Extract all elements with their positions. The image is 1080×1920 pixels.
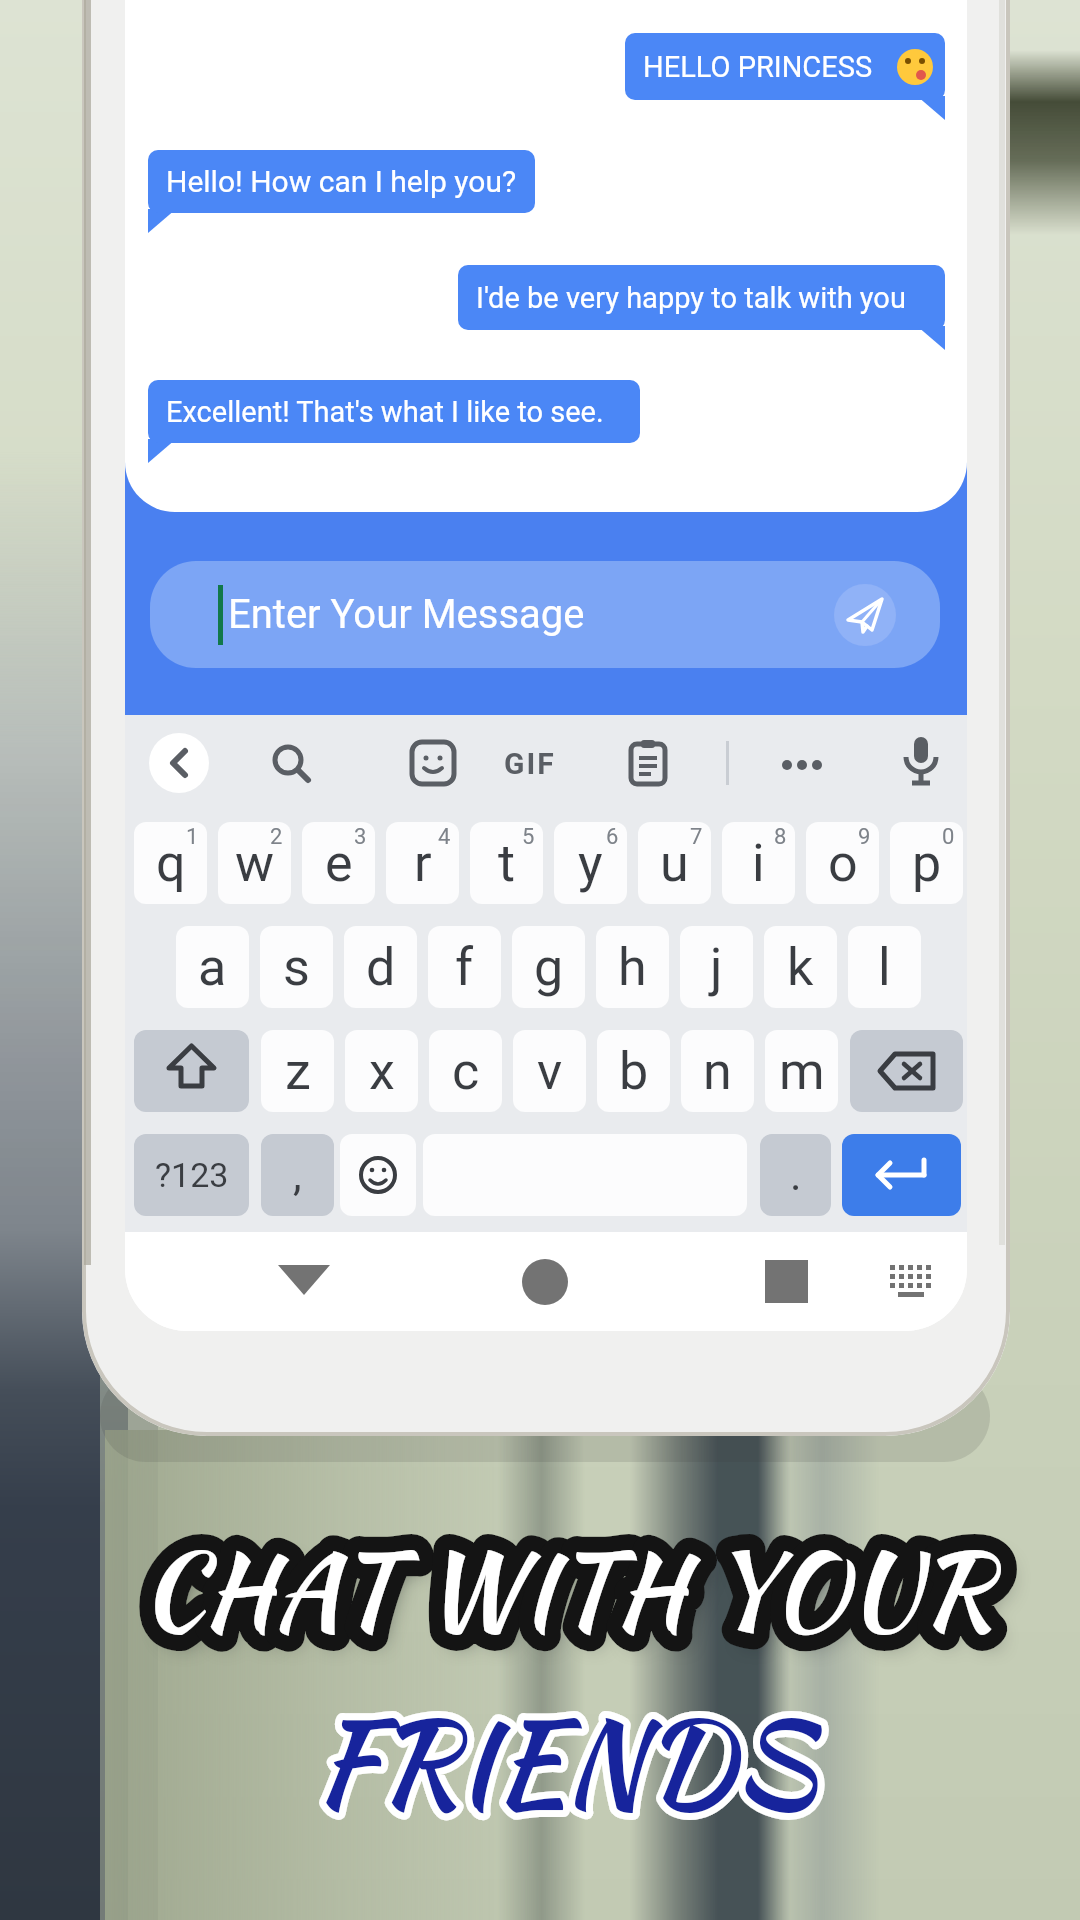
button[interactable]: k xyxy=(764,926,837,1008)
staticText: j xyxy=(710,937,723,998)
button[interactable]: v xyxy=(513,1030,586,1112)
staticText: CHAT WITH YOUR xyxy=(26,1514,1080,1665)
button[interactable] xyxy=(277,1255,331,1309)
button[interactable]: z xyxy=(261,1030,334,1112)
staticText: f xyxy=(455,937,474,998)
button[interactable]: r xyxy=(386,822,459,904)
button[interactable]: j xyxy=(680,926,753,1008)
button[interactable]: n xyxy=(681,1030,754,1112)
button[interactable]: l xyxy=(848,926,921,1008)
staticText: HELLO PRINCESS xyxy=(643,50,873,84)
button[interactable] xyxy=(896,735,946,791)
button[interactable]: HELLO PRINCESS xyxy=(625,33,945,100)
staticText: b xyxy=(619,1041,649,1102)
button[interactable]: s xyxy=(260,926,333,1008)
button[interactable]: p xyxy=(890,822,963,904)
button[interactable]: g xyxy=(512,926,585,1008)
button[interactable] xyxy=(134,1030,249,1112)
button[interactable] xyxy=(888,1259,934,1305)
button[interactable]: i xyxy=(722,822,795,904)
button[interactable]: . xyxy=(760,1134,831,1216)
button[interactable] xyxy=(340,1134,416,1216)
staticText: c xyxy=(452,1041,480,1102)
button[interactable] xyxy=(521,1258,569,1306)
button[interactable] xyxy=(850,1030,963,1112)
staticText: 5 xyxy=(522,824,535,850)
staticText: CHAT WITH YOUR xyxy=(26,1514,1080,1665)
button[interactable]: b xyxy=(597,1030,670,1112)
staticText: t xyxy=(498,833,516,894)
staticText: 2 xyxy=(270,824,283,850)
button[interactable]: o xyxy=(806,822,879,904)
button[interactable]: Excellent! That's what I like to see. xyxy=(148,380,640,443)
button[interactable]: f xyxy=(428,926,501,1008)
button[interactable]: h xyxy=(596,926,669,1008)
staticText: 9 xyxy=(858,824,871,850)
staticText: p xyxy=(912,833,942,894)
button[interactable] xyxy=(408,738,458,788)
staticText: v xyxy=(537,1041,563,1102)
button[interactable] xyxy=(266,738,316,788)
staticText: 0 xyxy=(942,824,955,850)
staticText: q xyxy=(156,833,186,894)
staticText: n xyxy=(703,1041,732,1102)
button[interactable]: I'de be very happy to talk with you xyxy=(458,265,945,330)
staticText: 1 xyxy=(186,824,199,850)
staticText: 4 xyxy=(438,824,451,850)
staticText: h xyxy=(618,937,647,998)
staticText: o xyxy=(828,833,858,894)
staticText: Excellent! That's what I like to see. xyxy=(166,395,604,429)
staticText: x xyxy=(369,1041,395,1102)
button[interactable]: t xyxy=(470,822,543,904)
staticText: z xyxy=(285,1041,311,1102)
staticText: 3 xyxy=(354,824,367,850)
button[interactable]: y xyxy=(554,822,627,904)
button[interactable]: w xyxy=(218,822,291,904)
button[interactable]: a xyxy=(176,926,249,1008)
staticText: i xyxy=(752,833,765,894)
button[interactable]: Hello! How can I help you? xyxy=(148,150,535,213)
button[interactable] xyxy=(777,738,827,788)
button[interactable]: u xyxy=(638,822,711,904)
staticText: Hello! How can I help you? xyxy=(166,164,517,199)
staticText: . xyxy=(790,1149,802,1201)
staticText: y xyxy=(578,833,603,894)
staticText: GIF xyxy=(504,746,556,781)
button[interactable] xyxy=(623,738,673,788)
staticText: w xyxy=(235,833,275,894)
staticText: ?123 xyxy=(155,1155,229,1195)
staticText: a xyxy=(198,937,227,998)
button[interactable]: e xyxy=(302,822,375,904)
staticText: 6 xyxy=(606,824,619,850)
button[interactable] xyxy=(149,733,209,793)
staticText: r xyxy=(414,833,432,894)
button[interactable]: x xyxy=(345,1030,418,1112)
staticText: 7 xyxy=(690,824,703,850)
staticText: l xyxy=(878,937,891,998)
staticText: d xyxy=(366,937,396,998)
staticText: m xyxy=(779,1041,825,1102)
staticText: u xyxy=(660,833,689,894)
button[interactable]: m xyxy=(765,1030,838,1112)
staticText: FRIENDS xyxy=(24,1678,1080,1846)
staticText: , xyxy=(293,1149,302,1201)
staticText: k xyxy=(787,937,814,998)
button[interactable]: q xyxy=(134,822,207,904)
button[interactable]: , xyxy=(261,1134,334,1216)
button[interactable]: d xyxy=(344,926,417,1008)
staticText: e xyxy=(325,833,353,894)
button[interactable]: c xyxy=(429,1030,502,1112)
button[interactable]: Enter Your Message xyxy=(150,561,940,668)
staticText: g xyxy=(534,937,564,998)
staticText: Enter Your Message xyxy=(228,591,585,638)
staticText: I'de be very happy to talk with you xyxy=(476,281,906,315)
button[interactable]: GIF xyxy=(500,738,560,788)
button[interactable]: ?123 xyxy=(134,1134,249,1216)
button[interactable] xyxy=(842,1134,961,1216)
staticText: FRIENDS xyxy=(24,1678,1080,1846)
button[interactable] xyxy=(834,584,896,646)
staticText: 8 xyxy=(774,824,787,850)
staticText: s xyxy=(283,937,310,998)
